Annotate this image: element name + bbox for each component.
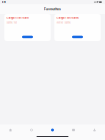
- button[interactable]: Search: [21, 127, 42, 132]
- button[interactable]: Category Item Name: [4, 14, 51, 41]
- staticText: Subtitle Text: [6, 21, 17, 24]
- button[interactable]: Profile: [84, 127, 105, 132]
- staticText: Category Two Names: [56, 16, 78, 19]
- staticText: Category Item Name: [6, 16, 28, 19]
- button[interactable]: Home: [0, 127, 21, 132]
- button[interactable]: Library: [63, 127, 84, 132]
- button[interactable]: Category Two Names: [54, 14, 101, 41]
- staticText: Favourites: [44, 7, 61, 11]
- staticText: Another Subtitle: [56, 21, 70, 24]
- button[interactable]: Favourites: [42, 127, 63, 132]
- staticText: 9:41: [2, 1, 6, 3]
